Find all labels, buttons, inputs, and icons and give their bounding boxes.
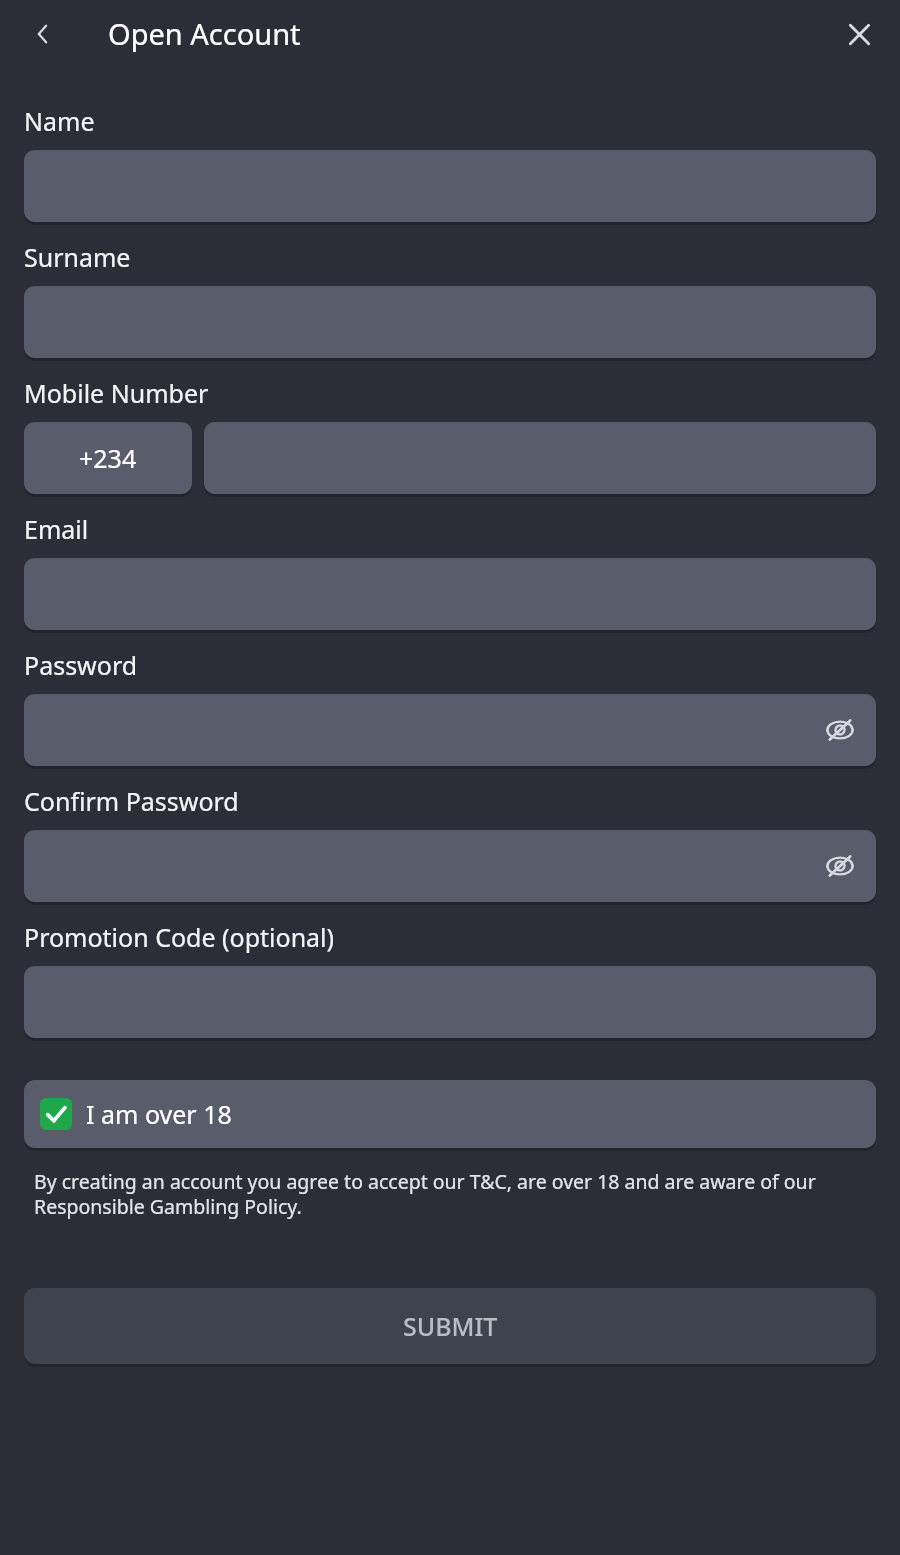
button[interactable]: Back xyxy=(16,7,70,61)
staticText: Confirm Password xyxy=(24,784,239,818)
button[interactable]: I am over 18 xyxy=(24,1080,876,1148)
staticText: By creating an account you agree to acce… xyxy=(34,1168,860,1220)
other: Show password xyxy=(825,851,855,881)
staticText: Email xyxy=(24,512,89,546)
staticText: I am over 18 xyxy=(86,1097,232,1131)
button[interactable]: SUBMIT xyxy=(24,1288,876,1364)
staticText: Name xyxy=(24,104,95,138)
staticText: Password xyxy=(24,648,138,682)
staticText: Mobile Number xyxy=(24,376,209,410)
button[interactable]: Close xyxy=(832,7,886,61)
staticText: Promotion Code (optional) xyxy=(24,920,335,954)
staticText: Surname xyxy=(24,240,131,274)
staticText: +234 xyxy=(79,441,137,475)
button[interactable]: Show password xyxy=(24,830,876,902)
other: Show password xyxy=(825,715,855,745)
staticText: SUBMIT xyxy=(403,1309,498,1343)
button[interactable]: +234 xyxy=(24,422,192,494)
staticText: Open Account xyxy=(108,14,301,53)
button[interactable]: Show password xyxy=(24,694,876,766)
